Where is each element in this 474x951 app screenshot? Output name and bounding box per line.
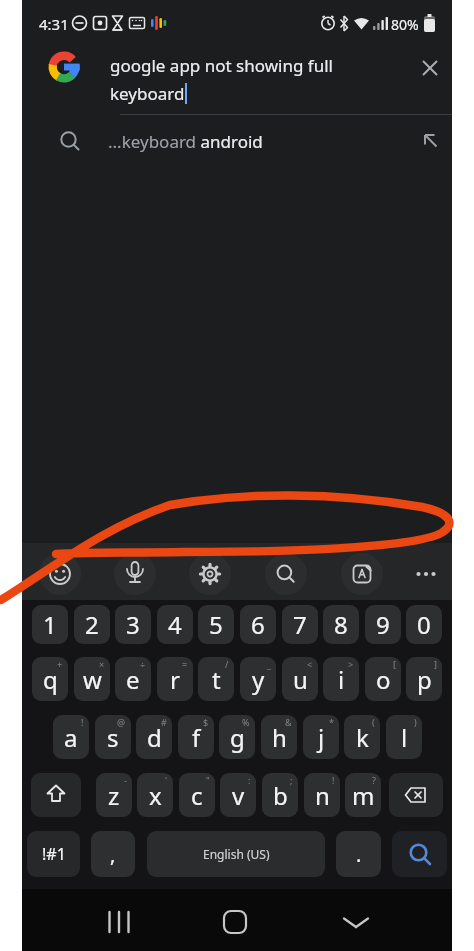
button[interactable]: k — [344, 715, 380, 759]
button[interactable] — [189, 553, 231, 595]
button[interactable] — [392, 831, 447, 877]
staticText: = — [182, 658, 188, 670]
button[interactable]: p — [406, 657, 442, 701]
button[interactable]: . — [336, 831, 381, 877]
staticText: v — [232, 779, 245, 812]
button[interactable]: v — [220, 773, 256, 817]
button[interactable]: a — [53, 715, 89, 759]
staticText: English (US) — [203, 846, 270, 862]
button[interactable] — [265, 553, 307, 595]
staticText: 80% — [391, 15, 419, 34]
staticText: e — [126, 663, 140, 696]
staticText: : — [248, 774, 251, 786]
staticText: !#1 — [42, 843, 66, 865]
staticText: google app not showing full — [110, 54, 333, 77]
staticText: c — [191, 779, 203, 812]
staticText: h — [272, 721, 287, 754]
staticText: _ — [267, 658, 271, 670]
button[interactable]: , — [91, 831, 135, 877]
staticText: 2 — [85, 608, 99, 641]
button[interactable] — [39, 553, 81, 595]
staticText: 6 — [251, 608, 265, 641]
button[interactable]: n — [304, 773, 340, 817]
staticText: < — [307, 658, 313, 670]
button[interactable] — [389, 773, 443, 817]
button[interactable]: 5 — [198, 605, 234, 644]
staticText: ! — [81, 716, 84, 728]
button[interactable]: q — [32, 657, 68, 701]
staticText: w — [83, 663, 102, 696]
staticText: - — [124, 774, 127, 786]
button[interactable] — [47, 50, 81, 84]
button[interactable]: l — [386, 715, 422, 759]
button[interactable]: c — [179, 773, 215, 817]
button[interactable]: h — [261, 715, 297, 759]
button[interactable]: 4 — [157, 605, 193, 644]
button[interactable] — [31, 773, 81, 817]
button[interactable]: s — [95, 715, 131, 759]
button[interactable]: 8 — [323, 605, 359, 644]
button[interactable]: z — [96, 773, 132, 817]
button[interactable]: ...keyboard android — [22, 118, 452, 164]
staticText: a — [64, 721, 78, 754]
staticText: ÷ — [140, 658, 146, 670]
staticText: t — [212, 663, 221, 696]
button[interactable]: 0 — [406, 605, 442, 644]
staticText: i — [338, 663, 345, 696]
button[interactable]: f — [178, 715, 214, 759]
button[interactable]: e — [115, 657, 151, 701]
button[interactable] — [341, 553, 383, 595]
staticText: ; — [290, 774, 293, 786]
button[interactable]: 3 — [115, 605, 151, 644]
button[interactable]: 2 — [74, 605, 110, 644]
button[interactable]: o — [365, 657, 401, 701]
staticText: p — [417, 663, 432, 696]
staticText: r — [170, 663, 180, 696]
staticText: ] — [434, 658, 437, 670]
button[interactable]: t — [198, 657, 234, 701]
button[interactable]: b — [262, 773, 298, 817]
staticText: ? — [372, 774, 376, 786]
staticText: 8 — [334, 608, 348, 641]
button[interactable]: 1 — [32, 605, 68, 644]
button[interactable]: English (US) — [147, 831, 325, 877]
staticText: d — [147, 721, 162, 754]
staticText: & — [285, 716, 292, 728]
button[interactable]: u — [282, 657, 318, 701]
button[interactable]: g — [219, 715, 255, 759]
button[interactable] — [114, 553, 156, 595]
button[interactable]: m — [345, 773, 381, 817]
button[interactable]: 6 — [240, 605, 276, 644]
staticText: o — [376, 663, 391, 696]
button[interactable]: 7 — [282, 605, 318, 644]
button[interactable]: d — [136, 715, 172, 759]
staticText: , — [110, 841, 116, 868]
staticText: g — [230, 721, 245, 754]
staticText: l — [401, 721, 408, 754]
staticText: keyboard — [110, 82, 185, 105]
staticText: + — [57, 658, 63, 670]
button[interactable]: i — [323, 657, 359, 701]
staticText: m — [352, 779, 375, 812]
staticText: 0 — [417, 608, 431, 641]
button[interactable]: !#1 — [27, 831, 80, 877]
staticText: u — [293, 663, 308, 696]
staticText: ...keyboard android — [108, 130, 263, 153]
button[interactable]: w — [74, 657, 110, 701]
button[interactable]: j — [303, 715, 339, 759]
staticText: ) — [414, 716, 417, 728]
button[interactable]: x — [137, 773, 173, 817]
staticText: k — [356, 721, 369, 754]
staticText: 4:31 — [39, 14, 69, 34]
button[interactable] — [215, 902, 255, 942]
button[interactable]: y — [240, 657, 276, 701]
button[interactable] — [405, 553, 447, 595]
staticText: 5 — [209, 608, 223, 641]
button[interactable] — [99, 902, 139, 942]
button[interactable] — [414, 52, 446, 84]
button[interactable] — [336, 902, 376, 942]
staticText: . — [356, 841, 362, 868]
button[interactable]: r — [157, 657, 193, 701]
button[interactable]: 9 — [365, 605, 401, 644]
staticText: ! — [332, 774, 335, 786]
